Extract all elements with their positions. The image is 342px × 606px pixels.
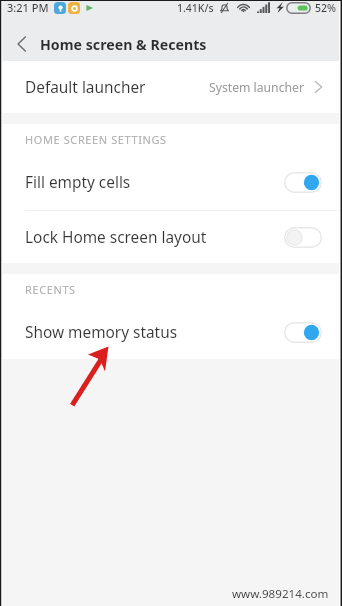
button[interactable]: Switch on <box>284 172 322 193</box>
button[interactable]: Switch on <box>284 322 322 343</box>
button[interactable]: Lock Home screen layout <box>0 211 342 263</box>
staticText: 52% <box>315 1 336 15</box>
staticText: Lock Home screen layout <box>25 227 207 248</box>
button[interactable]: Back <box>0 27 40 61</box>
staticText: 1.41K/s <box>177 1 214 15</box>
staticText: RECENTS <box>25 282 76 297</box>
staticText: 3:21 PM <box>7 0 49 15</box>
button[interactable]: Show memory status <box>0 305 342 359</box>
staticText: Home screen & Recents <box>40 35 207 54</box>
staticText: Show memory status <box>25 322 178 343</box>
staticText: Fill empty cells <box>25 172 131 193</box>
staticText: HOME SCREEN SETTINGS <box>25 132 167 147</box>
button[interactable]: Switch off <box>284 227 322 248</box>
button[interactable]: Default launcher <box>0 61 342 113</box>
staticText: Default launcher <box>25 77 146 98</box>
staticText: System launcher <box>209 79 304 96</box>
staticText: www.989214.com <box>232 586 329 602</box>
button[interactable]: Fill empty cells <box>0 155 342 210</box>
